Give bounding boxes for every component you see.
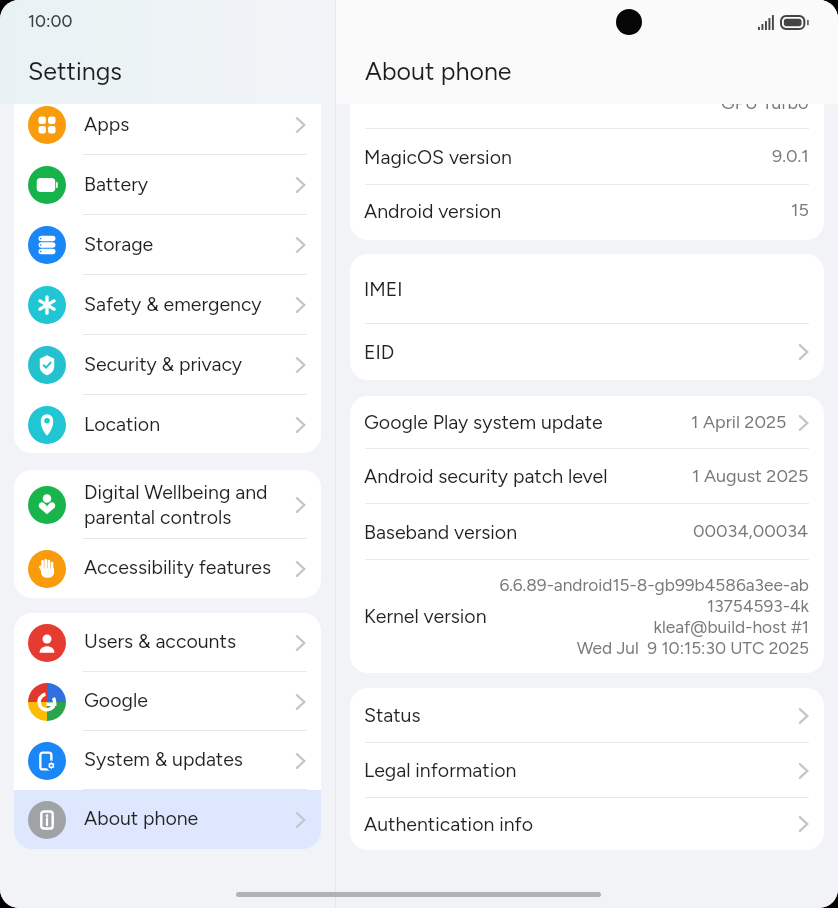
staticText: Legal information (364, 758, 517, 781)
button[interactable]: Storage (14, 215, 321, 275)
button[interactable]: Google Play system update (350, 396, 824, 449)
staticText: MagicOS version (364, 145, 512, 168)
staticText: GPU Turbo (721, 104, 809, 114)
staticText: System & updates (84, 747, 283, 770)
staticText: EID (364, 340, 395, 363)
button[interactable]: EID (350, 324, 824, 380)
staticText: Storage (84, 232, 283, 255)
button[interactable]: Battery (14, 155, 321, 215)
button[interactable]: MagicOS version (350, 129, 824, 185)
staticText: 10:00 (28, 11, 73, 31)
staticText: 00034,00034 (693, 520, 809, 542)
staticText: Wed Jul 9 10:15:30 UTC 2025 (576, 638, 809, 659)
staticText: IMEI (364, 277, 403, 300)
staticText: Settings (28, 56, 122, 86)
staticText: kleaf@build-host #1 (653, 617, 809, 638)
staticText: Google Play system update (364, 410, 603, 433)
button[interactable]: Digital Wellbeing and parental controls (14, 470, 321, 539)
staticText: About phone (365, 56, 512, 86)
button[interactable]: Location (14, 395, 321, 453)
button[interactable]: About phone (14, 790, 321, 849)
staticText: 13754593-4k (706, 596, 809, 617)
staticText: Google (84, 688, 283, 711)
staticText: 1 April 2025 (691, 411, 787, 433)
staticText: 15 (791, 199, 809, 221)
button[interactable]: IMEI (350, 254, 824, 324)
button[interactable]: Legal information (350, 743, 824, 798)
staticText: Security & privacy (84, 352, 283, 375)
button[interactable]: Apps (14, 104, 321, 155)
staticText: Baseband version (364, 520, 518, 543)
button[interactable]: Users & accounts (14, 613, 321, 672)
staticText: Accessibility features (84, 555, 283, 578)
staticText: 9.0.1 (772, 145, 809, 167)
button[interactable]: Safety & emergency (14, 275, 321, 335)
button[interactable]: Android security patch level (350, 449, 824, 504)
staticText: Battery (84, 172, 283, 195)
staticText: Location (84, 412, 283, 435)
staticText: Authentication info (364, 812, 534, 835)
staticText: Digital Wellbeing and parental controls (84, 480, 283, 529)
staticText: Status (364, 703, 421, 726)
button[interactable]: Baseband version (350, 504, 824, 560)
staticText: About phone (84, 806, 283, 829)
button[interactable]: Accessibility features (14, 539, 321, 598)
button[interactable]: System & updates (14, 731, 321, 790)
button[interactable]: Status (350, 688, 824, 743)
staticText: Android version (364, 199, 502, 222)
staticText: Kernel version (364, 604, 487, 627)
button[interactable]: Authentication info (350, 798, 824, 850)
button[interactable]: GPU Turbo (350, 104, 824, 129)
staticText: Users & accounts (84, 629, 283, 652)
staticText: Android security patch level (364, 464, 608, 487)
button[interactable]: Android version (350, 185, 824, 240)
other: Camera (616, 9, 642, 35)
button[interactable]: Kernel version (350, 560, 824, 673)
staticText: 1 August 2025 (692, 465, 809, 487)
staticText: Apps (84, 112, 283, 135)
staticText: Safety & emergency (84, 292, 283, 315)
staticText: 6.6.89-android15-8-gb99b4586a3ee-ab (499, 575, 809, 596)
button[interactable]: Security & privacy (14, 335, 321, 395)
button[interactable]: Google (14, 672, 321, 731)
